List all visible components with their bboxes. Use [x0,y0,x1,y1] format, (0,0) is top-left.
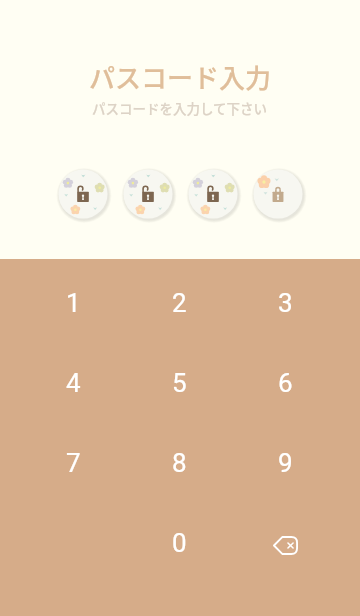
staticText: 5 [172,368,187,398]
button[interactable]: Delete [232,503,338,583]
button[interactable]: 8 [126,423,232,503]
staticText: パスコード入力 [89,58,272,96]
staticText: 3 [278,288,293,318]
button[interactable]: 3 [232,263,338,343]
button[interactable]: 1 [20,263,126,343]
staticText: パスコードを入力して下さい [92,98,268,118]
button[interactable] [122,168,174,220]
staticText: 8 [172,448,187,478]
button[interactable] [57,168,109,220]
button[interactable]: 9 [232,423,338,503]
staticText: 9 [278,448,293,478]
staticText: 7 [66,448,81,478]
button[interactable] [187,168,239,220]
button[interactable]: 4 [20,343,126,423]
staticText: 2 [172,288,187,318]
staticText: 4 [66,368,81,398]
button[interactable]: 2 [126,263,232,343]
button[interactable]: 7 [20,423,126,503]
button[interactable]: 5 [126,343,232,423]
button[interactable]: 6 [232,343,338,423]
button[interactable]: 0 [126,503,232,583]
staticText: 0 [172,528,187,558]
staticText: 1 [66,288,81,318]
staticText: 6 [278,368,293,398]
button[interactable] [252,168,304,220]
